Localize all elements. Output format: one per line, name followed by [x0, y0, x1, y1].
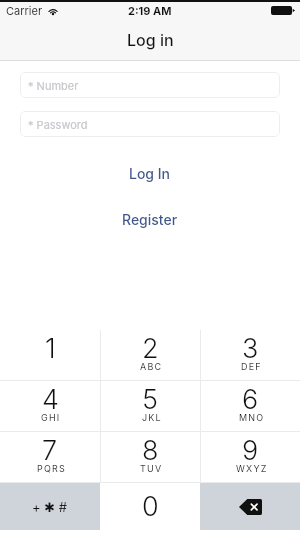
staticText: 6 — [242, 383, 259, 416]
button[interactable]: 2 — [101, 330, 200, 380]
button[interactable]: Register — [0, 207, 300, 231]
staticText: 4 — [42, 383, 59, 416]
staticText: JKL — [142, 412, 162, 423]
staticText: WXYZ — [236, 463, 268, 474]
button[interactable]: Log In — [0, 161, 300, 185]
staticText: 9 — [242, 434, 259, 467]
staticText: Log in — [127, 30, 174, 49]
staticText: Log In — [129, 165, 171, 182]
staticText: GHI — [41, 412, 61, 423]
button[interactable]: 6 — [201, 381, 300, 431]
staticText: 0 — [142, 490, 159, 523]
button[interactable]: 4 — [0, 381, 100, 431]
staticText: TUV — [140, 463, 163, 474]
staticText: 7 — [42, 434, 58, 467]
staticText: 8 — [142, 434, 159, 467]
staticText: Carrier — [6, 4, 43, 17]
button[interactable]: 1 — [0, 330, 100, 380]
staticText: DEF — [241, 361, 262, 372]
staticText: 2:19 AM — [128, 4, 172, 17]
staticText: * Number — [28, 79, 79, 92]
staticText: + ✱ # — [32, 499, 68, 515]
button[interactable]: 5 — [101, 381, 200, 431]
button[interactable]: 9 — [201, 432, 300, 482]
staticText: 1 — [45, 332, 56, 365]
staticText: Register — [122, 211, 178, 228]
staticText: * Password — [28, 118, 88, 131]
button[interactable]: Delete — [200, 483, 300, 530]
button[interactable]: * Number — [20, 72, 280, 98]
button[interactable]: 7 — [0, 432, 100, 482]
staticText: ABC — [140, 361, 163, 372]
button[interactable]: 0 — [100, 483, 200, 530]
staticText: MNO — [239, 412, 265, 423]
button[interactable]: 8 — [101, 432, 200, 482]
button[interactable]: 3 — [201, 330, 300, 380]
staticText: PQRS — [37, 463, 66, 474]
button[interactable]: + ✱ # — [0, 483, 100, 530]
button[interactable]: * Password — [20, 111, 280, 137]
staticText: 3 — [242, 332, 259, 365]
staticText: 5 — [142, 383, 159, 416]
staticText: 2 — [142, 332, 159, 365]
